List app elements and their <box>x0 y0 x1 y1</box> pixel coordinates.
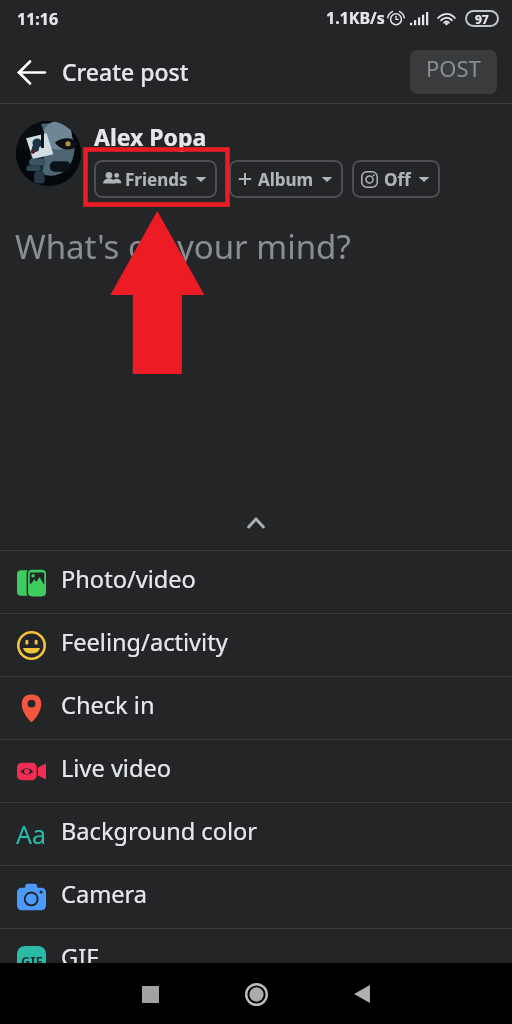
button[interactable]: Aa <box>0 803 512 865</box>
staticText: What's on your mind? <box>15 224 351 269</box>
button[interactable]: Profile picture <box>16 121 81 186</box>
staticText: Feeling/activity <box>61 626 228 658</box>
button[interactable]: Check in <box>0 677 512 739</box>
staticText: Off <box>384 168 411 191</box>
staticText: GIF <box>21 952 43 970</box>
button[interactable]: Home <box>234 972 278 1016</box>
staticText: POST <box>426 53 481 83</box>
button[interactable]: Feeling/activity <box>0 614 512 676</box>
staticText: 97 <box>475 11 489 27</box>
button[interactable]: POST <box>410 50 497 94</box>
button[interactable]: Back <box>340 972 384 1016</box>
button[interactable]: Camera <box>0 866 512 928</box>
button[interactable]: Off <box>352 160 440 198</box>
button[interactable]: Album <box>229 160 343 198</box>
staticText: Photo/video <box>61 563 196 595</box>
staticText: Create post <box>62 56 189 87</box>
staticText: 1.1KB/s <box>326 7 385 29</box>
staticText: Friends <box>125 168 188 191</box>
button[interactable]: Photo/video <box>0 551 512 613</box>
staticText: Background color <box>61 815 258 847</box>
button[interactable]: Expand options <box>236 505 276 541</box>
button[interactable]: Live video <box>0 740 512 802</box>
staticText: Check in <box>61 689 155 721</box>
button[interactable]: Back <box>8 49 54 95</box>
staticText: Aa <box>16 817 47 851</box>
button[interactable]: Recent apps <box>128 972 172 1016</box>
staticText: Camera <box>61 878 148 910</box>
staticText: Album <box>258 168 314 191</box>
staticText: 11:16 <box>17 8 59 30</box>
button[interactable]: Friends <box>94 160 217 198</box>
button[interactable]: GIF <box>0 929 512 991</box>
staticText: Alex Popa <box>94 121 207 152</box>
staticText: GIF <box>61 941 99 973</box>
staticText: Live video <box>61 752 172 784</box>
